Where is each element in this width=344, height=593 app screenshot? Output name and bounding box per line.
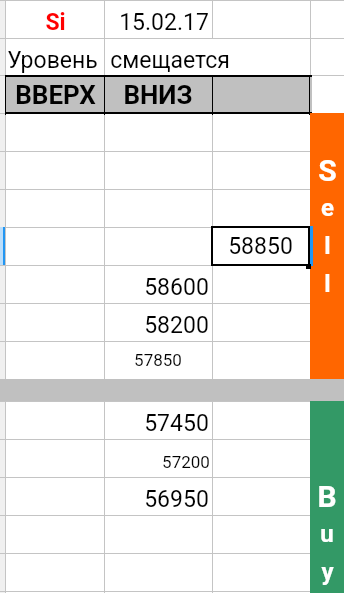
- button[interactable]: 56950: [104, 477, 212, 515]
- staticText: 58850: [228, 233, 293, 260]
- button[interactable]: 58850: [211, 226, 310, 266]
- button[interactable]: Уровень: [5, 38, 105, 76]
- button[interactable]: 57850: [104, 341, 212, 379]
- staticText: ВНИЗ: [123, 80, 193, 110]
- button[interactable]: Buy: [310, 401, 344, 593]
- staticText: 58600: [144, 274, 209, 301]
- staticText: l: [324, 270, 331, 298]
- button[interactable]: Sell: [310, 113, 344, 379]
- staticText: 15.02.17: [119, 9, 209, 36]
- button[interactable]: 57450: [104, 401, 212, 439]
- staticText: e: [321, 194, 334, 222]
- staticText: Уровень: [7, 47, 98, 74]
- staticText: 57200: [162, 452, 210, 472]
- staticText: 57850: [134, 350, 182, 370]
- staticText: 56950: [144, 486, 209, 513]
- staticText: y: [321, 558, 334, 586]
- staticText: Si: [45, 9, 66, 36]
- staticText: l: [324, 232, 331, 260]
- staticText: 57450: [144, 410, 209, 437]
- staticText: смещается: [110, 47, 230, 74]
- staticText: S: [318, 153, 337, 188]
- button[interactable]: 58200: [104, 303, 212, 341]
- button[interactable]: ВНИЗ: [104, 76, 212, 112]
- staticText: ВВЕРХ: [15, 80, 96, 110]
- button[interactable]: ВВЕРХ: [5, 76, 105, 112]
- button[interactable]: 58600: [104, 265, 212, 303]
- button[interactable]: смещается: [104, 38, 212, 76]
- button[interactable]: 15.02.17: [104, 0, 212, 38]
- staticText: u: [320, 520, 334, 548]
- staticText: 58200: [144, 312, 209, 339]
- button[interactable]: Si: [5, 0, 105, 38]
- staticText: B: [317, 479, 337, 514]
- button[interactable]: 57200: [104, 439, 212, 477]
